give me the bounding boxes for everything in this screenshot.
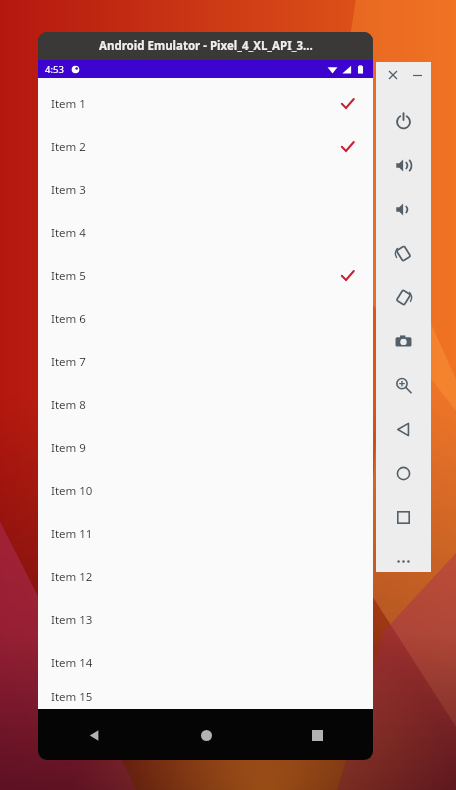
staticText: Android Emulator - Pixel_4_XL_API_3... xyxy=(99,38,313,54)
button[interactable]: Rotate right xyxy=(389,283,417,311)
staticText: Item 4 xyxy=(51,225,86,241)
staticText: Item 3 xyxy=(51,182,86,198)
button[interactable]: Item 9 xyxy=(38,426,373,469)
button[interactable]: Item 8 xyxy=(38,383,373,426)
staticText: 4:53 xyxy=(45,63,64,76)
button[interactable]: More xyxy=(389,547,417,575)
staticText: Item 14 xyxy=(51,655,93,671)
button[interactable]: Item 3 xyxy=(38,168,373,211)
button[interactable]: Volume down xyxy=(389,195,417,223)
button[interactable]: Recents xyxy=(295,713,339,757)
staticText: Item 15 xyxy=(51,689,93,705)
staticText: Item 11 xyxy=(51,526,93,542)
button[interactable]: Item 7 xyxy=(38,340,373,383)
button[interactable]: Item 6 xyxy=(38,297,373,340)
button[interactable]: Volume up xyxy=(389,151,417,179)
button[interactable]: Home xyxy=(389,459,417,487)
button[interactable]: Item 12 xyxy=(38,555,373,598)
button[interactable]: Power xyxy=(389,107,417,135)
staticText: Item 7 xyxy=(51,354,86,370)
button[interactable]: Screenshot xyxy=(389,327,417,355)
staticText: Item 9 xyxy=(51,440,86,456)
button[interactable]: Back xyxy=(72,713,116,757)
button[interactable]: Minimize xyxy=(406,64,428,86)
staticText: Item 2 xyxy=(51,139,86,155)
staticText: Item 5 xyxy=(51,268,86,284)
button[interactable]: Rotate left xyxy=(389,239,417,267)
button[interactable]: Item 11 xyxy=(38,512,373,555)
button[interactable]: Item 14 xyxy=(38,641,373,684)
button[interactable]: Item 2 xyxy=(38,125,373,168)
button[interactable]: Zoom xyxy=(389,371,417,399)
button[interactable]: Close xyxy=(382,64,404,86)
staticText: Item 6 xyxy=(51,311,86,327)
button[interactable]: Home xyxy=(184,713,228,757)
staticText: Item 8 xyxy=(51,397,86,413)
staticText: Item 10 xyxy=(51,483,93,499)
button[interactable]: Item 10 xyxy=(38,469,373,512)
button[interactable]: Item 5 xyxy=(38,254,373,297)
staticText: Item 12 xyxy=(51,569,93,585)
button[interactable]: Item 4 xyxy=(38,211,373,254)
button[interactable]: Recents xyxy=(389,503,417,531)
staticText: Item 1 xyxy=(51,96,86,112)
staticText: Item 13 xyxy=(51,612,93,628)
button[interactable]: Back xyxy=(389,415,417,443)
button[interactable]: Item 13 xyxy=(38,598,373,641)
button[interactable]: Item 1 xyxy=(38,82,373,125)
button[interactable]: Item 15 xyxy=(38,684,373,709)
